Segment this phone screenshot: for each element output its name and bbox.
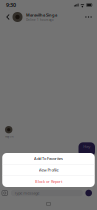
button[interactable]: Back (3, 10, 12, 23)
staticText: Online 1 hours ago (26, 18, 54, 22)
staticText: May 04 (5, 135, 14, 138)
staticText: Maravilha Singa (26, 12, 57, 18)
staticText: 9:30 (6, 1, 16, 9)
button[interactable]: Camera (1, 188, 9, 198)
staticText: View Profile (38, 167, 58, 173)
button[interactable]: Block or Report (2, 176, 95, 187)
button[interactable]: Add To Favorites (2, 153, 95, 164)
staticText: Hey (83, 144, 90, 149)
button[interactable]: View Profile (2, 164, 95, 176)
staticText: Block or Report (35, 179, 62, 184)
button[interactable]: Send (85, 190, 92, 196)
staticText: Add To Favorites (34, 156, 63, 161)
button[interactable]: More options (83, 10, 94, 23)
staticText: Type message (14, 190, 39, 196)
